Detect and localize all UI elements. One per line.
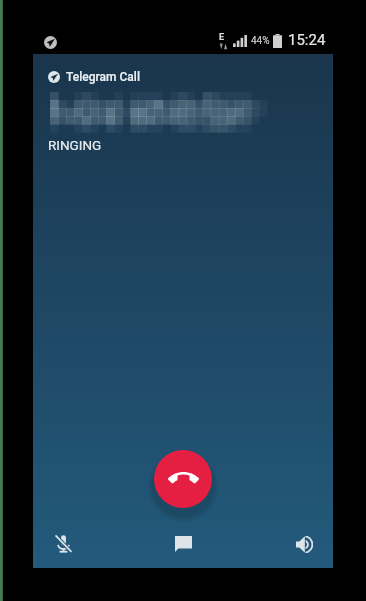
staticText: 15:24: [288, 31, 326, 49]
button[interactable]: Mute microphone: [37, 521, 89, 567]
staticText: 44%: [251, 35, 270, 47]
staticText: RINGING: [48, 137, 102, 153]
staticText: Telegram Call: [66, 70, 140, 84]
button[interactable]: End call: [154, 450, 212, 508]
button[interactable]: Speaker: [278, 521, 330, 567]
staticText: E: [219, 32, 225, 43]
button[interactable]: Chat: [157, 521, 209, 567]
